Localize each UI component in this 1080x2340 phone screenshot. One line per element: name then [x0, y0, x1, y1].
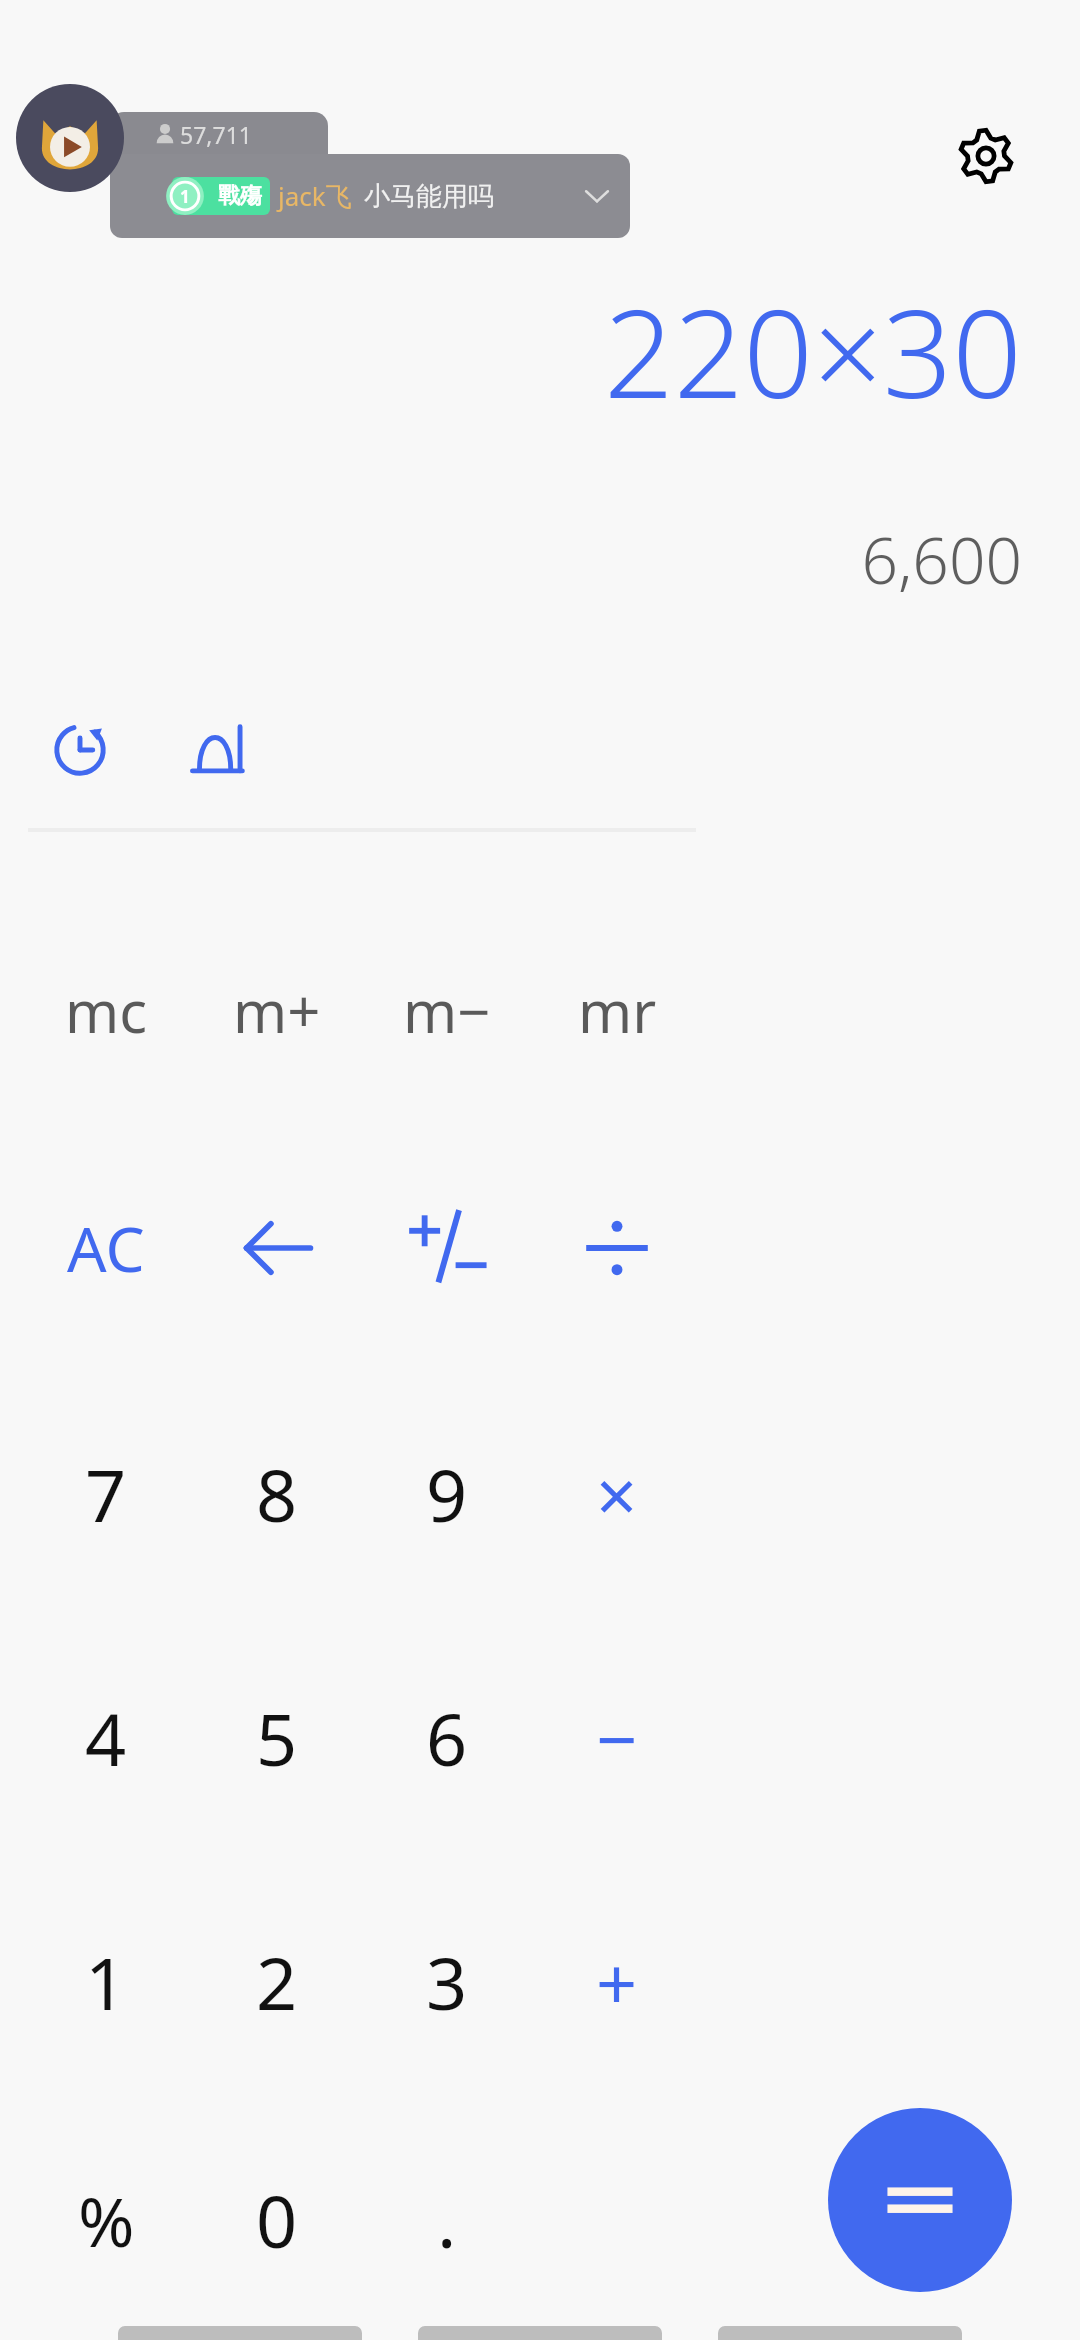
staticText: 220×30	[604, 268, 1022, 434]
button[interactable]: Navigation	[118, 2326, 362, 2340]
button[interactable]: mc	[21, 930, 191, 1090]
button[interactable]: AC	[21, 1168, 191, 1328]
button[interactable]: .	[362, 2140, 532, 2300]
button[interactable]: History	[30, 700, 130, 800]
button[interactable]: 9	[362, 1414, 532, 1574]
button[interactable]: +	[532, 1902, 702, 2062]
staticText: 0	[256, 2171, 298, 2269]
button[interactable]: mr	[532, 930, 702, 1090]
staticText: 6	[426, 1689, 468, 1787]
staticText: 戰殤	[218, 182, 262, 210]
button[interactable]: 6	[362, 1658, 532, 1818]
staticText: 9	[426, 1445, 468, 1543]
staticText: ×	[596, 1445, 638, 1543]
button[interactable]: 戰殤	[110, 154, 630, 238]
button[interactable]: m+	[192, 930, 362, 1090]
staticText: mr	[578, 971, 657, 1050]
button[interactable]: Settings	[950, 120, 1022, 192]
staticText: 4	[85, 1689, 127, 1787]
button[interactable]: Streamer avatar	[16, 84, 124, 192]
staticText: 57,711	[180, 119, 252, 150]
staticText: 2	[256, 1933, 298, 2031]
staticText: 5	[256, 1689, 298, 1787]
button[interactable]: 0	[192, 2140, 362, 2300]
button[interactable]: 2	[192, 1902, 362, 2062]
button[interactable]: Equals	[828, 2108, 1012, 2292]
staticText: m−	[403, 971, 491, 1050]
button[interactable]: Divide	[532, 1168, 702, 1328]
button[interactable]: 8	[192, 1414, 362, 1574]
staticText: 7	[85, 1445, 127, 1543]
staticText: +	[596, 1933, 638, 2031]
button[interactable]: 1	[21, 1902, 191, 2062]
staticText: 1	[180, 185, 190, 208]
button[interactable]: Plus minus	[362, 1168, 532, 1328]
button[interactable]: 7	[21, 1414, 191, 1574]
staticText: jack飞	[278, 178, 352, 214]
staticText: m+	[233, 971, 321, 1050]
staticText: 8	[256, 1445, 298, 1543]
button[interactable]: ×	[532, 1414, 702, 1574]
staticText: %	[78, 2174, 135, 2267]
button[interactable]: 3	[362, 1902, 532, 2062]
staticText: 3	[426, 1933, 468, 2031]
button[interactable]: %	[21, 2140, 191, 2300]
button[interactable]: m−	[362, 930, 532, 1090]
button[interactable]: Navigation	[418, 2326, 662, 2340]
staticText: 小马能用吗	[364, 180, 494, 213]
button[interactable]: Graph	[168, 700, 268, 800]
button[interactable]: −	[532, 1658, 702, 1818]
button[interactable]: 5	[192, 1658, 362, 1818]
button[interactable]: 4	[21, 1658, 191, 1818]
staticText: 6,600	[861, 516, 1022, 603]
button[interactable]: Navigation	[718, 2326, 962, 2340]
staticText: 1	[85, 1933, 127, 2031]
staticText: −	[596, 1689, 638, 1787]
staticText: mc	[65, 971, 148, 1050]
staticText: .	[437, 2171, 457, 2269]
staticText: AC	[67, 1206, 145, 1290]
button[interactable]: Backspace	[192, 1168, 362, 1328]
